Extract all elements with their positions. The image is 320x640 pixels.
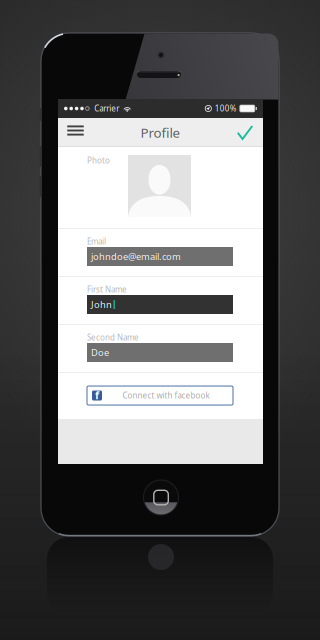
button[interactable]: Change photo [128,155,191,217]
staticText: Email [87,236,106,247]
staticText: Second Name [87,332,139,343]
staticText: Profile [140,124,180,141]
button[interactable]: johndoe@email.com [87,247,233,266]
button[interactable]: John [87,295,233,314]
button[interactable]: Save [230,118,260,147]
button[interactable]: Doe [87,343,233,362]
button[interactable]: Connect with facebook [87,386,233,405]
staticText: 100% [215,103,237,114]
staticText: johndoe@email.com [91,250,181,263]
staticText: Doe [91,346,109,359]
staticText: Photo [87,155,110,166]
staticText: Connect with facebook [122,390,209,401]
button[interactable]: Menu [59,118,92,147]
staticText: First Name [87,284,127,295]
staticText: John [91,298,112,311]
staticText: f [95,388,99,402]
staticText: Carrier [94,103,119,114]
